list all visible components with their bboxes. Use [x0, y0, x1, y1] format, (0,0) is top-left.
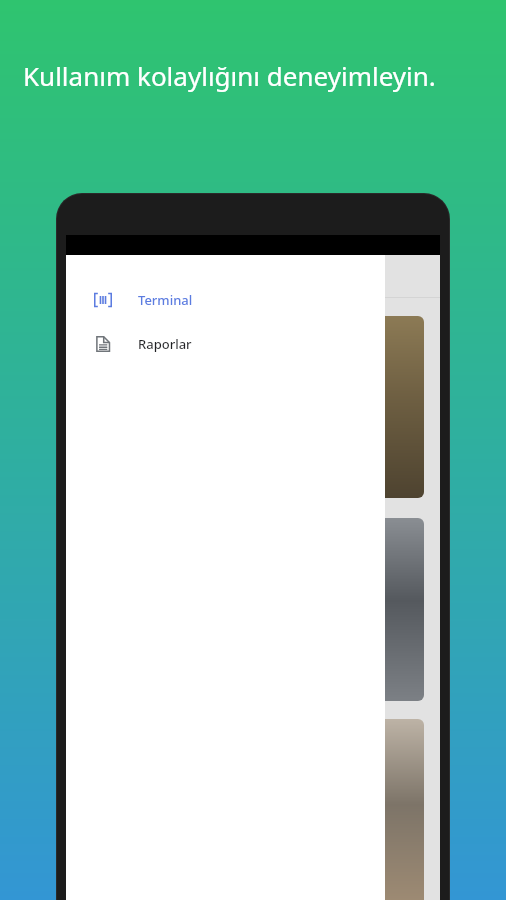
button[interactable]: Terminal: [66, 287, 385, 313]
button[interactable]: Raporlar: [66, 331, 385, 357]
staticText: Kullanım kolaylığını deneyimleyin.: [23, 58, 436, 93]
button[interactable]: [82, 719, 424, 900]
button[interactable]: [82, 316, 424, 498]
button[interactable]: [82, 518, 424, 701]
staticText: Raporlar: [138, 335, 192, 353]
staticText: Terminal: [138, 291, 193, 309]
